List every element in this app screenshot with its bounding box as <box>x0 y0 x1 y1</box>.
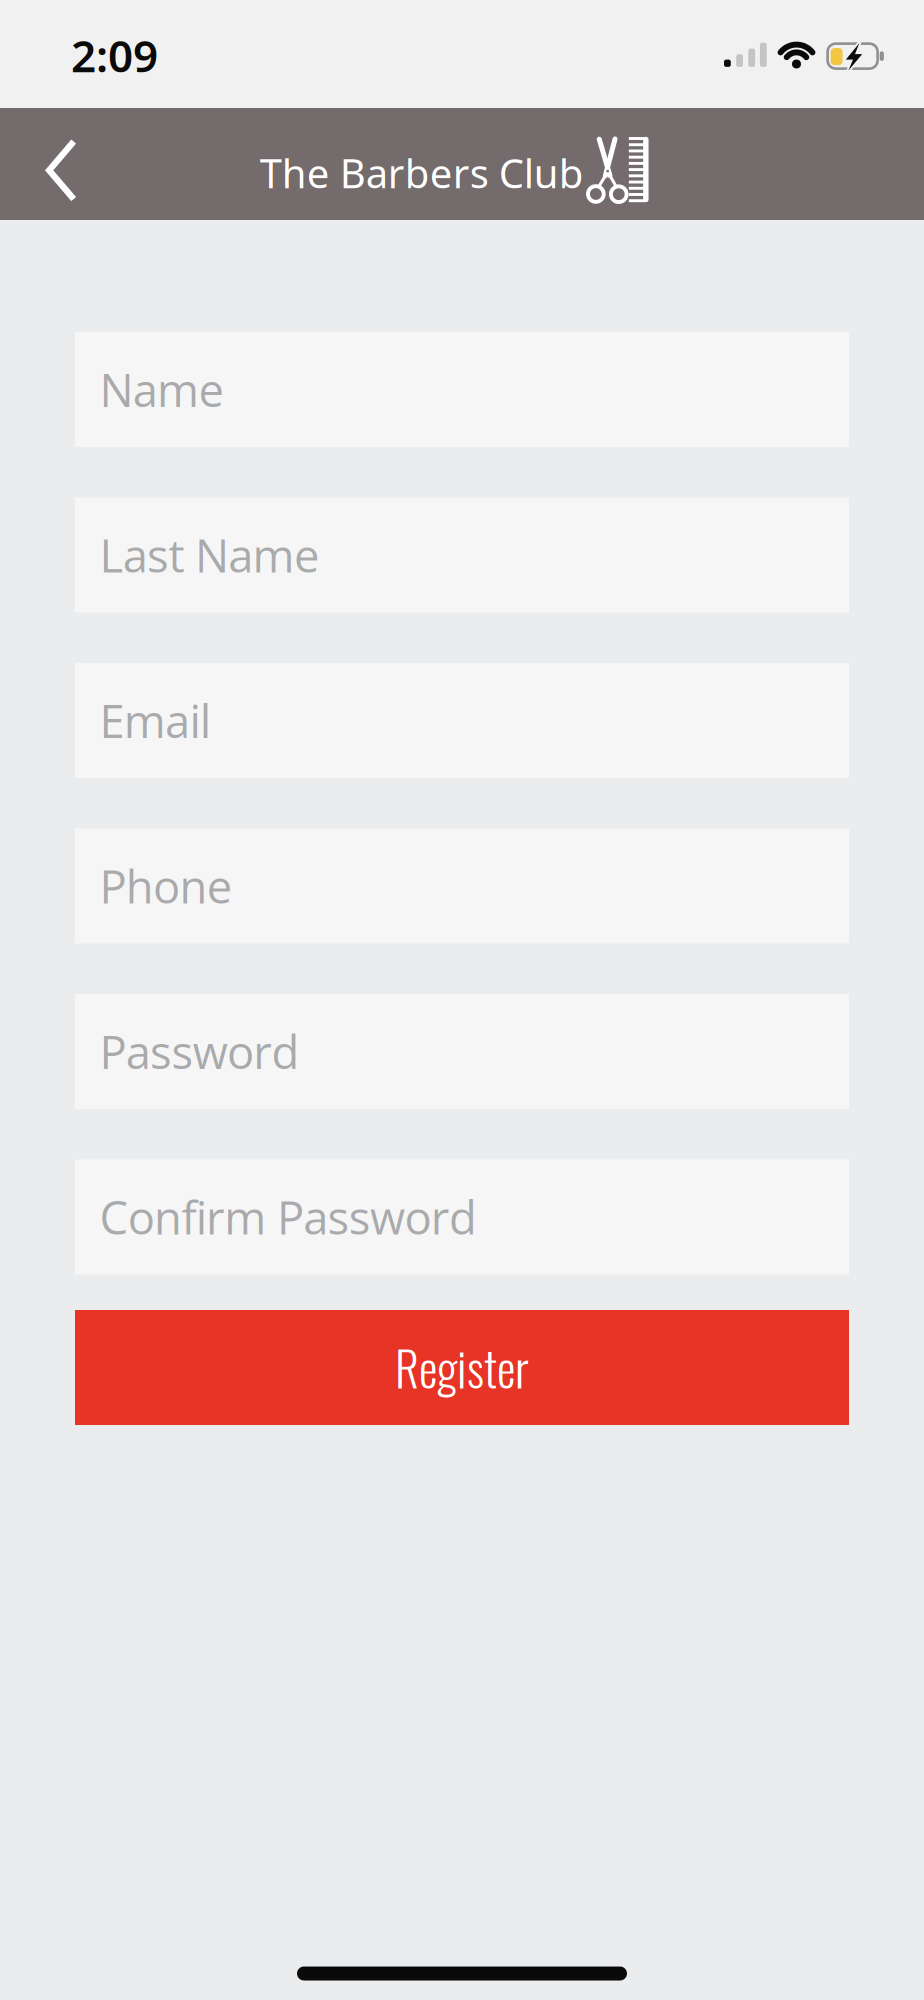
staticText: 2:09 <box>71 26 158 84</box>
staticText: Email <box>99 690 211 751</box>
button[interactable]: Register <box>75 1310 849 1425</box>
button[interactable]: Last Name <box>75 497 849 612</box>
button[interactable]: Phone <box>75 828 849 943</box>
staticText: Register <box>395 1333 529 1402</box>
staticText: Name <box>99 359 223 420</box>
button[interactable]: Confirm Password <box>75 1159 849 1274</box>
button[interactable]: Back <box>23 122 99 218</box>
staticText: Last Name <box>99 524 319 586</box>
staticText: The Barbers Club <box>260 146 584 199</box>
button[interactable]: Email <box>75 663 849 778</box>
button[interactable]: Password <box>75 994 849 1109</box>
button[interactable]: Name <box>75 332 849 447</box>
staticText: Confirm Password <box>99 1186 477 1248</box>
staticText: Password <box>99 1021 300 1082</box>
staticText: Phone <box>99 855 232 917</box>
